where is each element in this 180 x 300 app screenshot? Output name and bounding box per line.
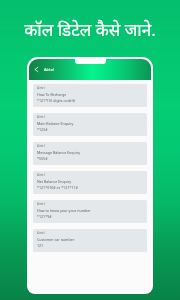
staticText: *121*9#: [37, 214, 52, 219]
staticText: *123#: [37, 127, 48, 132]
staticText: 121: [37, 243, 44, 248]
button[interactable]: Airtel: [33, 171, 147, 194]
staticText: Airtel: [37, 231, 45, 235]
staticText: Main Balance Enquiry: [37, 121, 74, 126]
staticText: Airtel: [37, 202, 45, 206]
button[interactable]: Airtel: [33, 84, 147, 107]
staticText: How To Recharge: [37, 92, 67, 97]
button[interactable]: Back: [31, 64, 42, 75]
staticText: *555#: [37, 156, 48, 161]
staticText: Airtel: [37, 115, 45, 119]
staticText: कॉल डिटेल कैसे जाने.: [0, 18, 180, 41]
staticText: Airtel: [37, 86, 45, 90]
staticText: How to know your your number: [37, 208, 91, 213]
button[interactable]: Airtel: [33, 113, 147, 136]
staticText: Airtel: [44, 67, 54, 72]
staticText: Message Balance Enquiry: [37, 150, 81, 155]
staticText: Net Balance Enquiry: [37, 179, 72, 184]
staticText: Airtel: [37, 144, 45, 148]
staticText: *121*010# or *121*11#: [37, 185, 78, 190]
staticText: Customer car number: [37, 237, 75, 242]
button[interactable]: Airtel: [33, 142, 147, 165]
staticText: Airtel: [37, 173, 45, 177]
button[interactable]: Airtel: [33, 200, 147, 223]
staticText: *121*(16 digits code)#: [37, 98, 76, 103]
button[interactable]: Airtel: [33, 229, 147, 252]
